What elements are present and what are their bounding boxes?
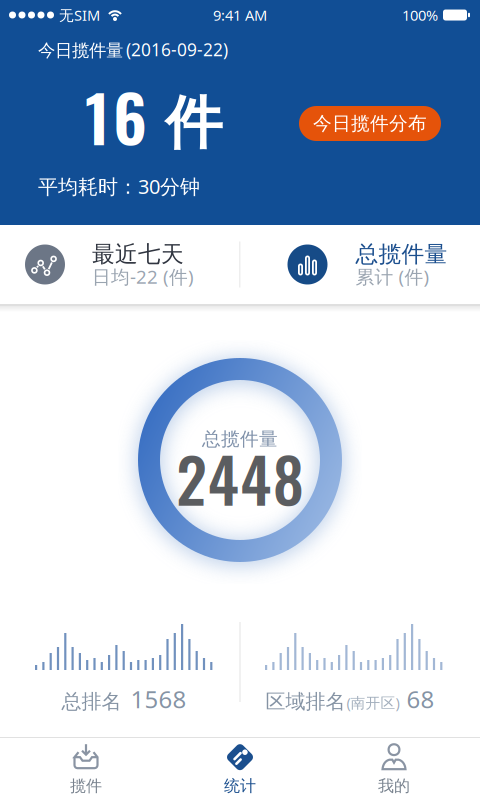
staticText: 总排名 <box>61 689 121 714</box>
staticText: 总揽件量 <box>202 427 278 450</box>
button[interactable]: 最近七天 <box>0 225 239 304</box>
staticText: 我的 <box>378 776 410 796</box>
button[interactable]: 总揽件量 <box>240 225 480 304</box>
staticText: 平均耗时：30分钟 <box>38 173 200 200</box>
staticText: 今日揽件分布 <box>313 112 427 135</box>
staticText: 100% <box>402 5 438 25</box>
staticText: (南开区) <box>346 693 399 712</box>
staticText: 件 <box>165 88 222 158</box>
staticText: (2016-09-22) <box>126 38 228 61</box>
staticText: 1568 <box>130 683 186 715</box>
staticText: 68 <box>400 683 434 715</box>
staticText: 2448 <box>176 433 304 523</box>
staticText: 无SIM <box>59 5 100 25</box>
button[interactable]: 今日揽件分布 <box>299 106 441 141</box>
staticText: 今日揽件量 <box>38 40 123 61</box>
staticText: 累计 (件) <box>355 264 429 289</box>
staticText: 区域排名 <box>265 689 345 714</box>
staticText: 统计 <box>224 776 256 796</box>
button[interactable]: 我的 <box>320 738 480 800</box>
staticText: 日均-22 (件) <box>92 264 194 289</box>
staticText: 总揽件量 <box>355 240 447 268</box>
staticText: 9:41 AM <box>213 5 267 25</box>
staticText: 揽件 <box>70 776 102 796</box>
button[interactable]: 揽件 <box>0 738 160 800</box>
staticText: 最近七天 <box>92 240 184 268</box>
button[interactable]: 统计 <box>160 738 320 800</box>
staticText: 16 <box>85 69 147 164</box>
